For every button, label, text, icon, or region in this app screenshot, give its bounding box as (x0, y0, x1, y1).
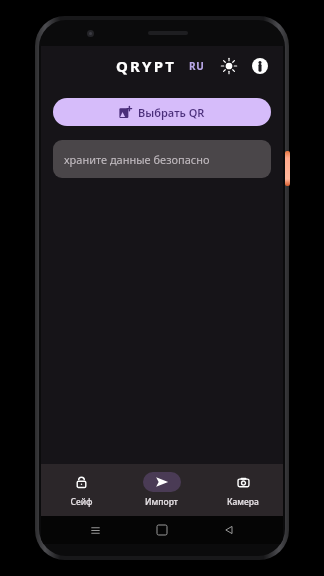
button[interactable]: Safe (41, 464, 121, 516)
other: Camera (228, 472, 258, 492)
button[interactable]: Information (251, 57, 269, 75)
button[interactable]: Home (149, 517, 175, 543)
button[interactable]: Import (121, 464, 202, 516)
staticText: Импорт (145, 496, 178, 508)
staticText: Сейф (70, 496, 93, 508)
staticText: Выбрать QR (138, 105, 205, 120)
staticText: Камера (227, 496, 259, 508)
button[interactable]: Back (216, 517, 242, 543)
staticText: RU (189, 59, 205, 73)
button[interactable]: Camera (202, 464, 283, 516)
button[interactable]: Toggle theme (219, 56, 239, 76)
button[interactable]: Выбрать QR (53, 98, 271, 126)
button[interactable]: RU (187, 57, 207, 75)
staticText: QRYPT (116, 56, 177, 76)
button[interactable]: храните данные безопасно (53, 140, 271, 178)
staticText: храните данные безопасно (64, 152, 210, 167)
other: Safe (66, 472, 96, 492)
other: Import (143, 472, 181, 492)
button[interactable]: Recent apps (82, 517, 108, 543)
